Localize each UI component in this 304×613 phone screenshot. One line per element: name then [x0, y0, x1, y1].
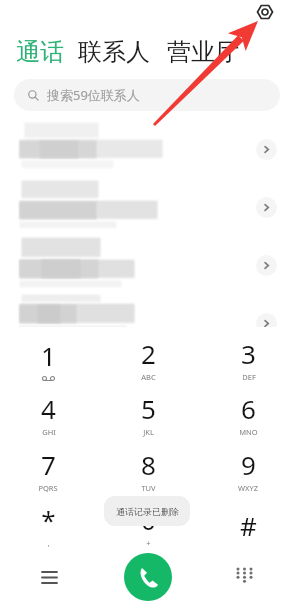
staticText: 5: [141, 391, 156, 426]
staticText: 通话: [16, 37, 64, 67]
button[interactable]: Open contact: [0, 176, 304, 234]
staticText: 3: [241, 336, 256, 371]
staticText: 8: [141, 447, 156, 482]
button[interactable]: 营业厅: [167, 37, 239, 67]
staticText: 9: [241, 447, 256, 482]
staticText: 营业厅: [167, 37, 239, 67]
button[interactable]: Dialpad: [228, 561, 260, 593]
staticText: 7: [41, 447, 56, 482]
button[interactable]: 7: [14, 447, 82, 493]
button[interactable]: Open contact: [256, 255, 277, 276]
staticText: 2: [141, 336, 156, 371]
button[interactable]: Call: [124, 553, 172, 601]
button[interactable]: 0: [114, 502, 182, 548]
staticText: GHI: [42, 427, 56, 437]
button[interactable]: 搜索59位联系人: [14, 79, 280, 111]
button[interactable]: Settings: [254, 1, 275, 22]
staticText: TUV: [141, 483, 156, 493]
button[interactable]: 3: [214, 336, 282, 382]
staticText: JKL: [143, 427, 154, 437]
staticText: PQRS: [38, 483, 58, 493]
staticText: WXYZ: [238, 483, 258, 493]
staticText: 4: [41, 391, 56, 426]
button[interactable]: Call log: [33, 561, 65, 593]
button[interactable]: 5: [114, 391, 182, 437]
staticText: 0: [141, 502, 156, 537]
staticText: *: [41, 502, 56, 537]
button[interactable]: 6: [214, 391, 282, 437]
staticText: 1: [41, 338, 56, 373]
button[interactable]: *: [14, 502, 82, 548]
staticText: 通话记录已删除: [116, 506, 179, 517]
staticText: ABC: [141, 372, 156, 382]
staticText: ,: [47, 538, 50, 548]
button[interactable]: 8: [114, 447, 182, 493]
button[interactable]: Open contact: [0, 118, 304, 176]
staticText: 联系人: [78, 37, 150, 67]
button[interactable]: #: [214, 502, 282, 548]
button[interactable]: Open contact: [256, 313, 277, 334]
button[interactable]: Open contact: [256, 197, 277, 218]
button[interactable]: 1: [14, 336, 82, 382]
staticText: 搜索59位联系人: [47, 86, 140, 104]
staticText: +: [146, 538, 151, 548]
button[interactable]: 通话: [16, 37, 64, 67]
staticText: 6: [241, 391, 256, 426]
button[interactable]: 4: [14, 391, 82, 437]
button[interactable]: 2: [114, 336, 182, 382]
staticText: #: [240, 508, 257, 543]
staticText: DEF: [242, 372, 256, 382]
button[interactable]: Open contact: [0, 292, 304, 350]
button[interactable]: 9: [214, 447, 282, 493]
button[interactable]: 联系人: [78, 37, 150, 67]
button[interactable]: Open contact: [256, 139, 277, 160]
button[interactable]: Open contact: [0, 234, 304, 292]
staticText: MNO: [239, 427, 258, 437]
